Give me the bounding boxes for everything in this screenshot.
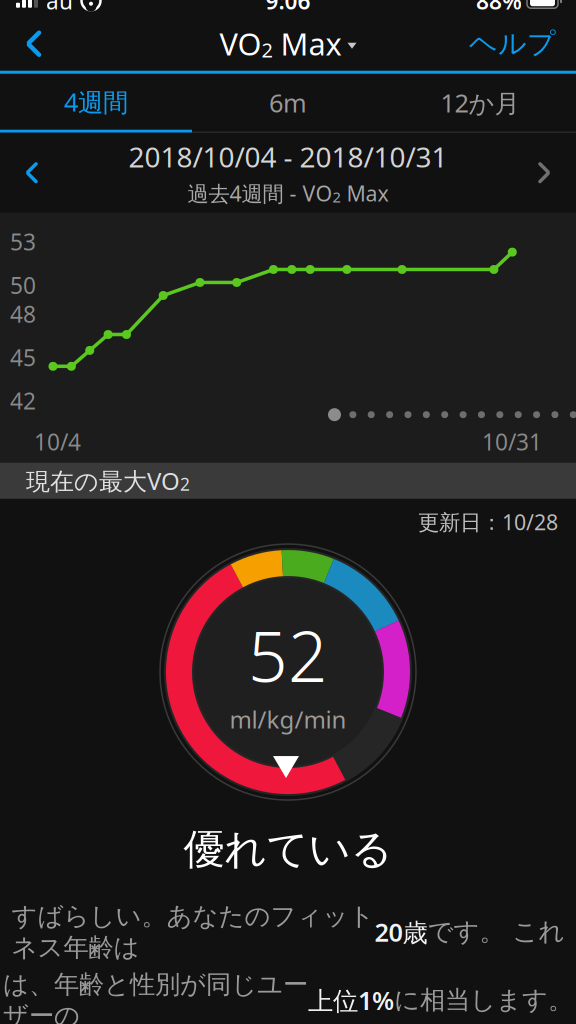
staticText: 2	[261, 36, 272, 63]
button[interactable]: 12か月	[384, 74, 576, 133]
staticText: 優れている	[183, 824, 392, 875]
staticText: 現在の最大VO	[26, 465, 180, 497]
staticText: 20歳	[374, 915, 427, 949]
staticText: 88%	[476, 0, 522, 16]
staticText: 2	[180, 473, 190, 496]
staticText: 10/4	[34, 427, 81, 457]
staticText: 6m	[269, 86, 307, 119]
staticText: は、年齢と性別が同じユーザーの	[3, 969, 308, 1024]
button[interactable]: VO2 Max を変更	[209, 22, 366, 66]
staticText: 50	[10, 270, 36, 300]
button[interactable]: ヘルプ	[461, 22, 564, 66]
staticText: 45	[10, 342, 36, 372]
staticText: Max	[340, 179, 388, 207]
staticText: です。 これ	[427, 916, 564, 947]
staticText: 4週間	[64, 85, 128, 118]
staticText: 42	[10, 386, 36, 416]
staticText: 更新日：10/28	[418, 508, 558, 536]
staticText: 10/31	[482, 427, 542, 457]
staticText: 9:06	[265, 0, 310, 16]
staticText: 過去4週間 - VO	[187, 179, 332, 207]
staticText: 53	[10, 227, 36, 257]
staticText: Max	[272, 23, 341, 64]
button[interactable]: 戻る	[12, 22, 56, 66]
staticText: すばらしい。あなたのフィットネス年齢は	[11, 901, 374, 963]
staticText: au	[46, 0, 73, 16]
button[interactable]: 6m	[192, 74, 384, 133]
staticText: ヘルプ	[469, 26, 556, 61]
staticText: 12か月	[440, 86, 519, 119]
button[interactable]: 次の期間	[522, 151, 566, 195]
staticText: VO	[219, 23, 261, 64]
staticText: 52	[248, 609, 328, 701]
staticText: 上位1%	[308, 983, 394, 1017]
staticText: 2	[332, 187, 340, 206]
staticText: に相当します。	[394, 985, 573, 1016]
staticText: ml/kg/min	[229, 703, 346, 735]
staticText: 48	[10, 299, 36, 329]
button[interactable]: 4週間	[0, 74, 192, 133]
button[interactable]: 前の期間	[10, 151, 54, 195]
staticText: 2018/10/04 - 2018/10/31	[128, 138, 447, 175]
